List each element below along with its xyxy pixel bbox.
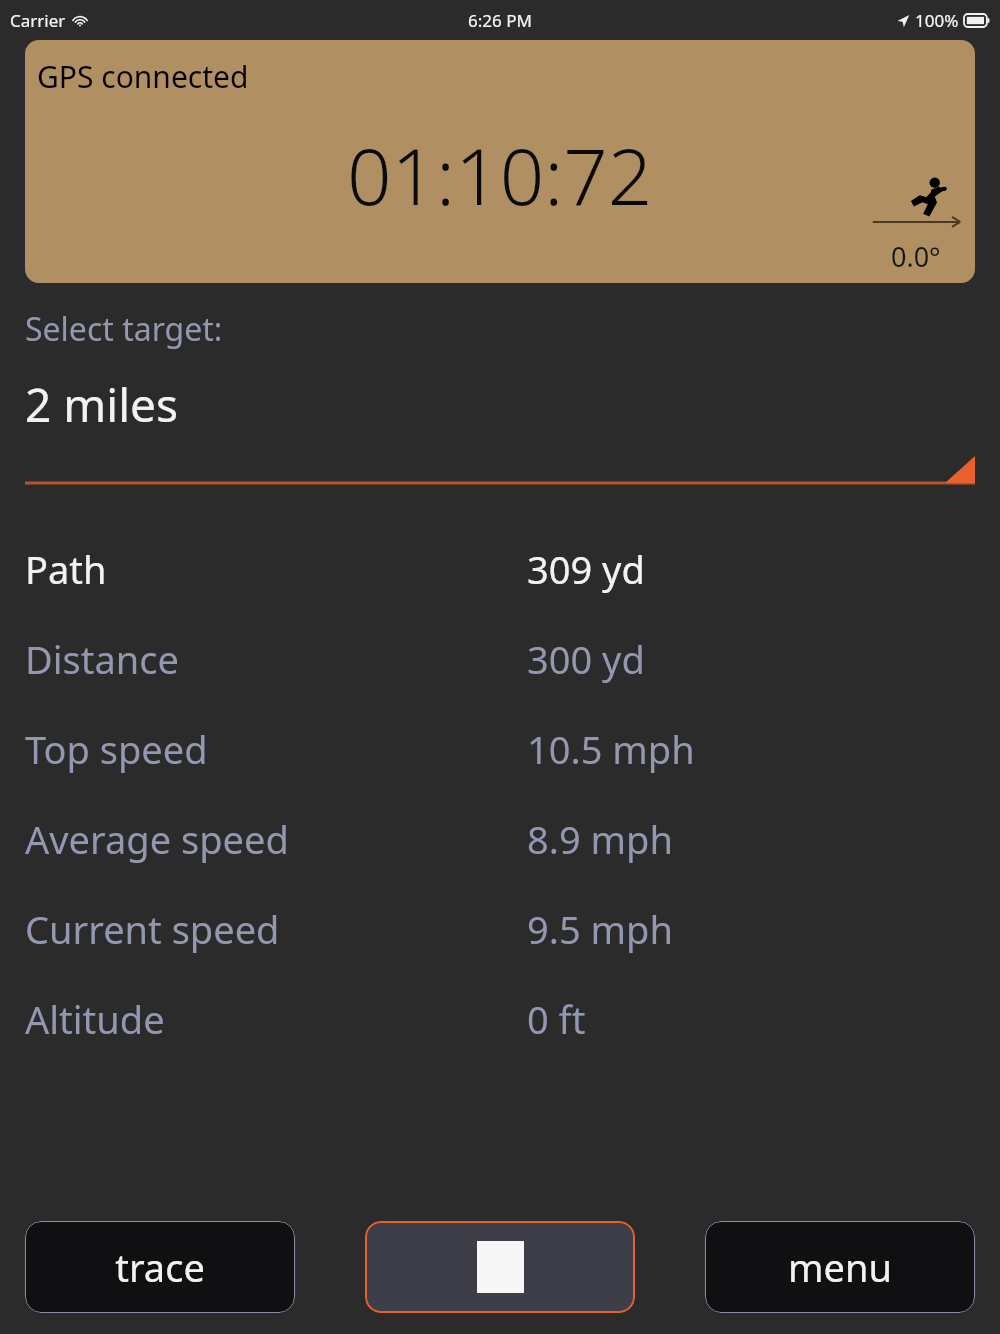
staticText: menu [788,1241,892,1293]
button[interactable]: Average speed [0,794,1000,884]
staticText: 01:10:72 [347,122,653,228]
staticText: Select target: [25,307,223,351]
staticText: Altitude [25,993,165,1045]
staticText: Distance [25,633,179,685]
button[interactable]: menu [705,1221,975,1313]
staticText: 10.5 mph [527,723,695,775]
staticText: Top speed [25,723,208,775]
staticText: 8.9 mph [527,813,673,865]
button[interactable]: GPS connected [25,40,975,283]
staticText: Average speed [25,813,289,865]
staticText: 2 miles [25,373,178,436]
button[interactable]: Altitude [0,974,1000,1064]
staticText: Current speed [25,903,280,955]
staticText: 300 yd [527,633,645,685]
staticText: Carrier [10,9,66,32]
staticText: 9.5 mph [527,903,673,955]
button[interactable]: Select target: [25,307,975,486]
staticText: trace [115,1241,205,1293]
button[interactable]: trace [25,1221,295,1313]
button[interactable]: Current speed [0,884,1000,974]
button[interactable]: Stop [365,1221,635,1313]
staticText: Path [25,543,107,595]
staticText: 6:26 PM [468,9,532,32]
staticText: 100% [915,9,959,32]
staticText: 0.0° [891,238,941,275]
staticText: 309 yd [527,543,645,595]
staticText: GPS connected [37,56,249,97]
button[interactable]: Path [0,524,1000,614]
button[interactable]: Top speed [0,704,1000,794]
staticText: 0 ft [527,993,586,1045]
button[interactable]: Distance [0,614,1000,704]
